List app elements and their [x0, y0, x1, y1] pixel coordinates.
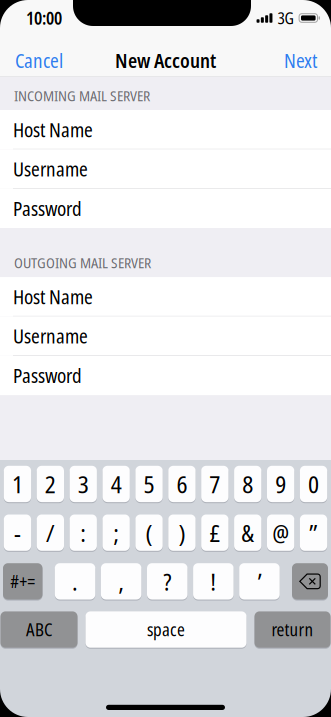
button[interactable]: ABC [0, 611, 77, 649]
staticText: 0 [308, 468, 319, 500]
button[interactable]: space [85, 611, 246, 649]
button[interactable]: ’ [239, 563, 280, 601]
staticText: Username [13, 323, 88, 349]
button[interactable]: 7 [201, 466, 228, 503]
button[interactable]: Username [0, 316, 331, 356]
button[interactable]: , [101, 563, 141, 601]
staticText: ) [178, 516, 185, 549]
button[interactable]: & [234, 514, 261, 552]
staticText: Username [13, 156, 88, 182]
button[interactable]: ? [147, 563, 187, 601]
staticText: 4 [111, 468, 122, 500]
button[interactable]: £ [201, 514, 228, 552]
staticText: Password [13, 362, 82, 389]
button[interactable]: Next [257, 44, 331, 77]
button[interactable]: 5 [135, 466, 163, 503]
staticText: Host Name [13, 116, 93, 143]
button[interactable]: 8 [234, 466, 261, 503]
staticText: ? [163, 565, 171, 598]
staticText: ! [210, 565, 216, 598]
button[interactable]: Username [0, 149, 331, 189]
staticText: . [72, 565, 78, 598]
staticText: space [147, 618, 185, 641]
staticText: return [271, 618, 313, 641]
button[interactable]: : [70, 514, 97, 552]
button[interactable]: 3 [70, 466, 97, 503]
staticText: - [14, 516, 21, 549]
button[interactable]: ” [300, 514, 327, 552]
staticText: INCOMING MAIL SERVER [14, 85, 150, 105]
button[interactable]: @ [267, 514, 294, 552]
button[interactable]: Host Name [0, 110, 331, 149]
staticText: Cancel [15, 47, 63, 74]
button[interactable]: ! [193, 563, 234, 601]
button[interactable]: Password [0, 356, 331, 395]
button[interactable]: Password [0, 189, 331, 228]
button[interactable]: 1 [4, 466, 31, 503]
staticText: @ [272, 516, 289, 549]
staticText: ” [309, 516, 318, 549]
staticText: Next [284, 47, 317, 74]
staticText: : [80, 516, 86, 549]
button[interactable]: . [55, 563, 95, 601]
button[interactable]: 2 [37, 466, 64, 503]
staticText: 5 [143, 468, 154, 500]
button[interactable]: ( [135, 514, 163, 552]
staticText: / [46, 516, 55, 549]
staticText: & [241, 516, 254, 549]
staticText: Host Name [13, 284, 93, 310]
button[interactable]: Host Name [0, 277, 331, 316]
staticText: 9 [275, 468, 286, 500]
staticText: 3 [78, 468, 89, 500]
staticText: 6 [176, 468, 187, 500]
staticText: ’ [257, 565, 261, 598]
staticText: New Account [115, 47, 216, 74]
button[interactable]: 9 [267, 466, 294, 503]
staticText: OUTGOING MAIL SERVER [14, 253, 151, 273]
staticText: 1 [12, 468, 23, 500]
button[interactable]: / [37, 514, 64, 552]
staticText: 3G [277, 7, 293, 29]
button[interactable]: ) [168, 514, 196, 552]
staticText: , [118, 565, 124, 598]
staticText: 10:00 [26, 6, 62, 30]
button[interactable]: #+= [3, 563, 42, 601]
staticText: ; [113, 516, 119, 549]
staticText: ABC [26, 618, 52, 641]
button[interactable]: Delete [292, 563, 328, 601]
button[interactable]: 0 [300, 466, 327, 503]
button[interactable]: ; [102, 514, 130, 552]
staticText: £ [209, 516, 220, 549]
staticText: 8 [242, 468, 253, 500]
button[interactable]: 4 [102, 466, 130, 503]
button[interactable]: Cancel [0, 44, 85, 77]
staticText: 7 [209, 468, 220, 500]
staticText: #+= [10, 569, 35, 593]
staticText: 2 [45, 468, 56, 500]
button[interactable]: return [254, 611, 330, 649]
staticText: Password [13, 195, 82, 221]
button[interactable]: - [4, 514, 31, 552]
staticText: ( [145, 516, 152, 549]
button[interactable]: 6 [168, 466, 196, 503]
